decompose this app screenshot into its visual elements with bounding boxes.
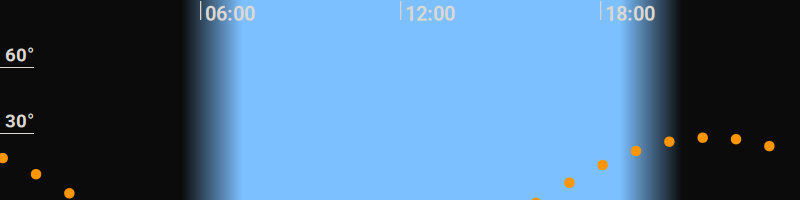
- staticText: 06:00: [205, 2, 255, 26]
- staticText: 12:00: [405, 2, 455, 26]
- staticText: 60°: [5, 44, 34, 66]
- staticText: 30°: [5, 110, 34, 132]
- staticText: 18:00: [605, 2, 655, 26]
